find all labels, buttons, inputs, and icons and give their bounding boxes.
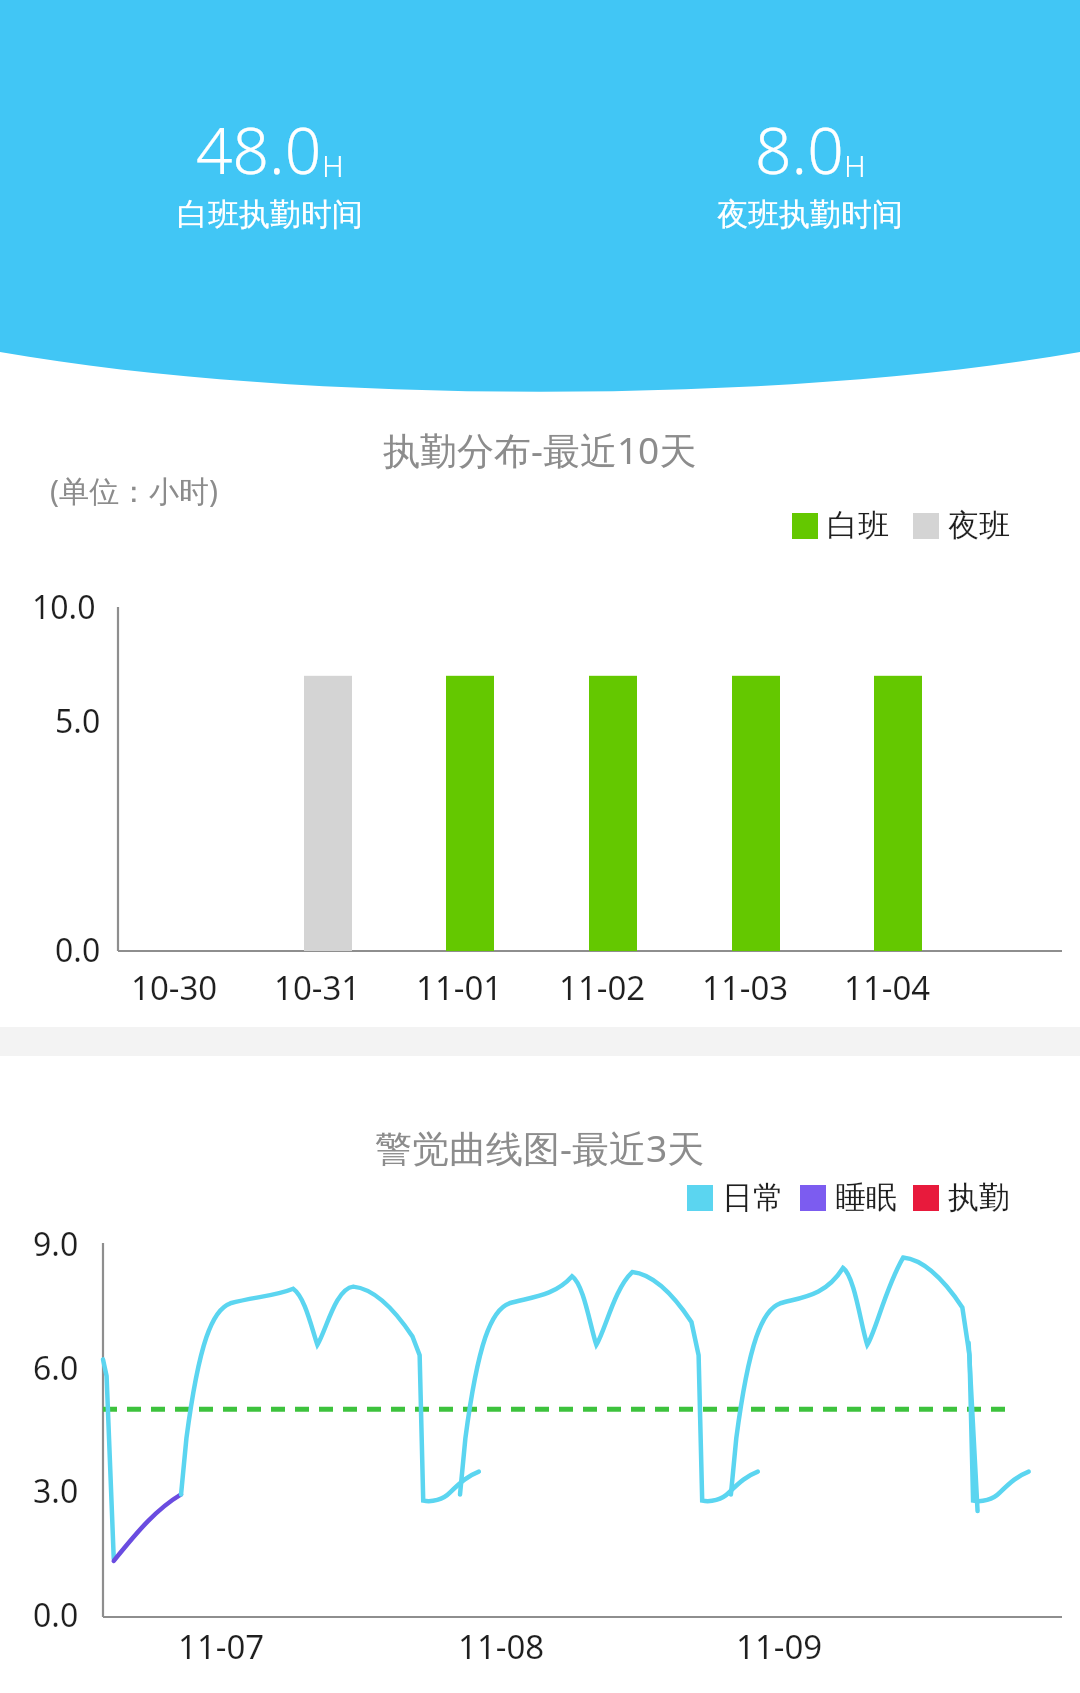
staticText: 9.0 [33, 1222, 79, 1266]
staticText: 10-31 [274, 965, 361, 1010]
staticText: H [322, 145, 344, 186]
staticText: 3.0 [33, 1469, 79, 1513]
staticText: 执勤分布-最近10天 [383, 424, 697, 475]
button[interactable]: 48.0 [177, 106, 363, 234]
staticText: 白班 [827, 506, 889, 545]
staticText: H [844, 145, 866, 186]
staticText: 0.0 [33, 1593, 79, 1637]
staticText: 白班执勤时间 [177, 195, 363, 234]
button[interactable]: 8.0 [717, 106, 903, 234]
staticText: 夜班 [948, 506, 1010, 545]
staticText: 睡眠 [835, 1178, 897, 1217]
staticText: 5.0 [55, 699, 101, 743]
staticText: 48.0 [196, 106, 322, 193]
button[interactable]: 睡眠 [800, 1178, 897, 1217]
button[interactable]: 白班 [792, 506, 889, 545]
staticText: 11-03 [702, 965, 789, 1010]
button[interactable]: 日常 [687, 1178, 784, 1217]
staticText: 11-08 [458, 1624, 545, 1669]
staticText: 夜班执勤时间 [717, 195, 903, 234]
staticText: 0.0 [55, 928, 101, 972]
button[interactable]: 执勤 [913, 1178, 1010, 1217]
staticText: 11-04 [844, 965, 931, 1010]
staticText: 10.0 [32, 585, 96, 629]
staticText: 8.0 [755, 106, 844, 193]
button[interactable]: 夜班 [913, 506, 1010, 545]
staticText: 10-30 [131, 965, 218, 1010]
staticText: 11-02 [559, 965, 646, 1010]
staticText: 11-09 [736, 1624, 823, 1669]
staticText: 11-01 [416, 965, 503, 1010]
staticText: 执勤 [948, 1178, 1010, 1217]
staticText: 11-07 [178, 1624, 265, 1669]
staticText: 6.0 [33, 1346, 79, 1390]
staticText: 警觉曲线图-最近3天 [375, 1122, 705, 1173]
staticText: 日常 [722, 1178, 784, 1217]
staticText: (单位：小时) [50, 470, 218, 511]
